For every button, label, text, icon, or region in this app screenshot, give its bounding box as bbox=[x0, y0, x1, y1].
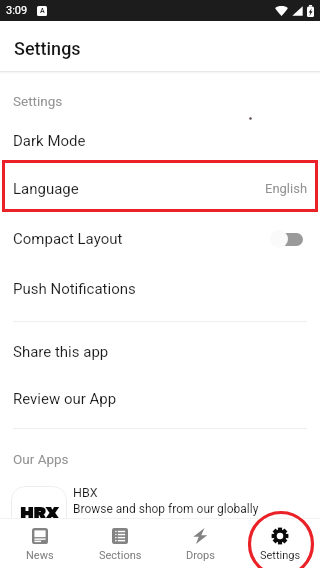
button[interactable]: Compact Layout bbox=[0, 213, 320, 264]
staticText: A bbox=[40, 7, 45, 15]
button[interactable]: HRX bbox=[0, 486, 320, 546]
staticText: Sections bbox=[99, 549, 142, 562]
staticText: HRX bbox=[20, 505, 59, 522]
staticText: Compact Layout bbox=[13, 230, 123, 248]
button[interactable]: Drops bbox=[160, 518, 240, 568]
staticText: Drops bbox=[186, 549, 215, 562]
staticText: Share this app bbox=[13, 343, 109, 361]
button[interactable]: News bbox=[0, 518, 80, 568]
staticText: Push Notifications bbox=[13, 280, 136, 298]
button[interactable]: Sections bbox=[80, 518, 160, 568]
button[interactable]: Dark Mode bbox=[0, 117, 320, 164]
staticText: Dark Mode bbox=[13, 132, 86, 150]
staticText: Settings bbox=[260, 549, 301, 562]
staticText: Settings bbox=[13, 93, 63, 109]
staticText: HBX bbox=[73, 485, 98, 500]
staticText: News bbox=[26, 549, 54, 562]
staticText: English bbox=[265, 181, 308, 196]
staticText: Browse and shop from our globally bbox=[73, 502, 259, 516]
button[interactable]: Review our App bbox=[0, 375, 320, 423]
button[interactable]: Settings bbox=[240, 518, 320, 568]
button[interactable]: Share this app bbox=[0, 328, 320, 375]
staticText: Our Apps bbox=[13, 451, 69, 467]
button[interactable]: Push Notifications bbox=[0, 264, 320, 314]
button[interactable]: Language bbox=[0, 164, 320, 213]
staticText: Review our App bbox=[13, 390, 117, 408]
staticText: Language bbox=[13, 180, 79, 198]
staticText: Settings bbox=[14, 38, 81, 59]
staticText: 3:09 bbox=[6, 4, 28, 17]
